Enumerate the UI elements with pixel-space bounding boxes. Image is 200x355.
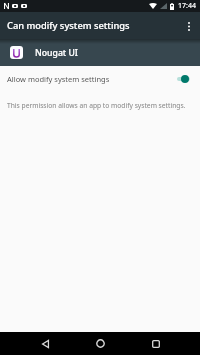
staticText: 17:44 [178, 1, 196, 11]
button[interactable]: Allow modify system settings [0, 66, 200, 91]
button[interactable]: Nougat UI [0, 39, 200, 66]
button[interactable]: Recent apps [142, 332, 170, 355]
staticText: This permission allows an app to modify … [7, 101, 186, 110]
button[interactable]: Back [31, 332, 59, 355]
button[interactable]: Home [86, 332, 114, 355]
button[interactable]: More options [178, 15, 200, 37]
staticText: Nougat UI [35, 47, 78, 59]
staticText: Can modify system settings [7, 19, 130, 32]
staticText: Allow modify system settings [7, 74, 110, 84]
